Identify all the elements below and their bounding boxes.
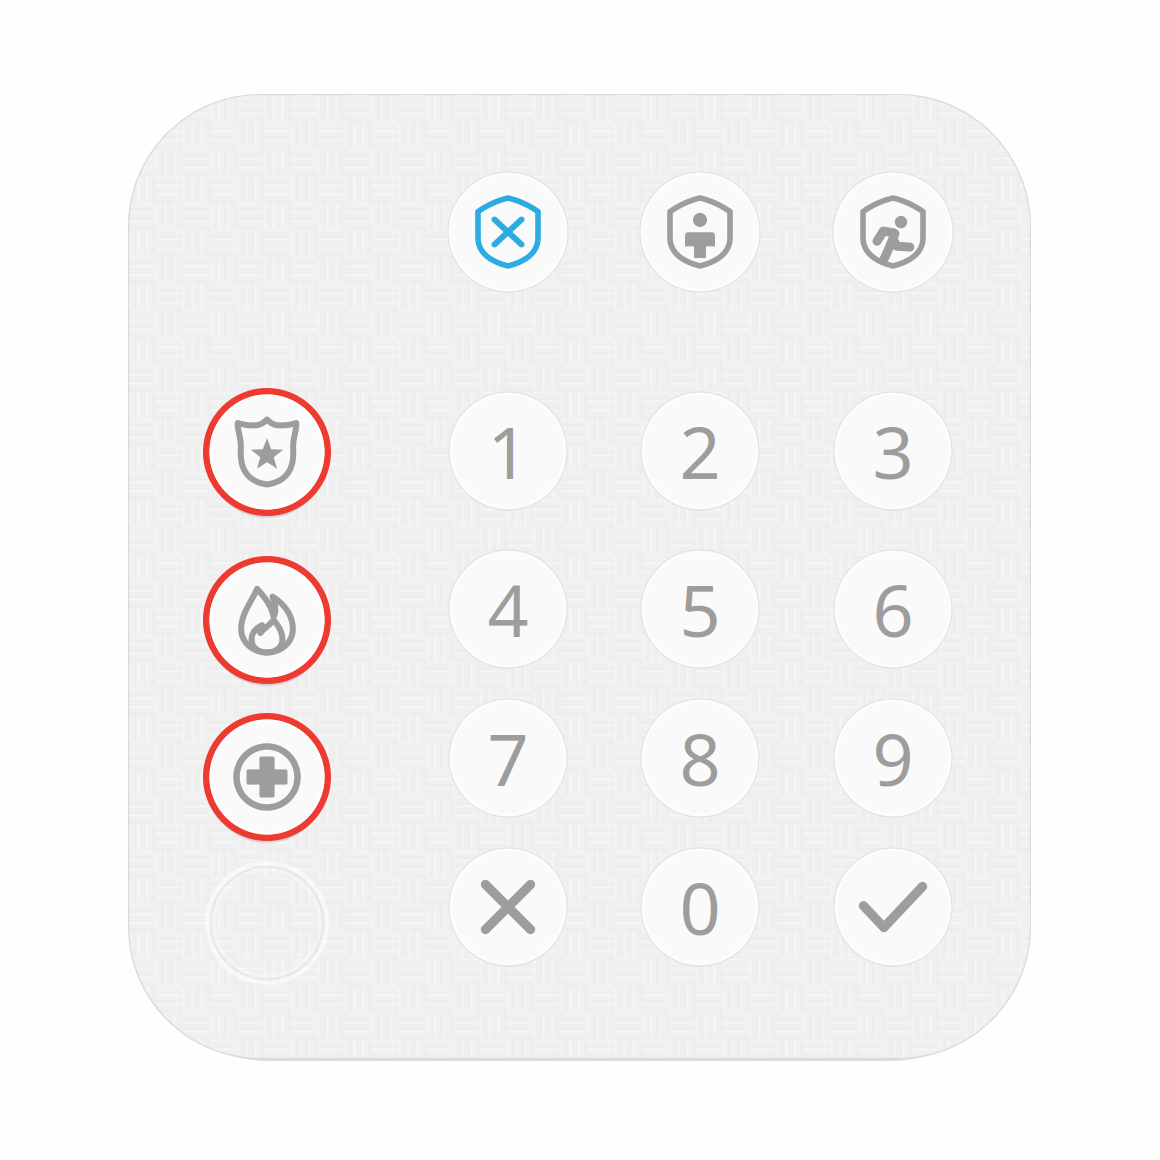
staticText: 1 [487,403,528,499]
button[interactable]: 8 [631,689,768,826]
staticText: 7 [487,710,528,806]
button[interactable]: Arm stay [630,162,769,301]
button[interactable]: 7 [439,689,576,826]
staticText: 6 [872,561,913,657]
button[interactable]: 3 [824,382,961,519]
button[interactable]: 4 [439,540,576,677]
button[interactable]: Medical [194,704,340,850]
button[interactable]: Clear [439,838,576,975]
staticText: 5 [679,561,720,657]
button[interactable]: Arm away [823,162,962,301]
staticText: 8 [679,710,720,806]
button[interactable]: Disarm [438,162,577,301]
staticText: 4 [487,561,528,657]
button[interactable]: Fire [194,547,340,693]
button[interactable]: 0 [631,838,768,975]
button[interactable]: Enter [824,838,961,975]
staticText: 9 [872,710,913,806]
staticText: 3 [872,403,913,499]
button[interactable]: 5 [631,540,768,677]
button[interactable]: Police [194,379,340,525]
button[interactable]: 6 [824,540,961,677]
button[interactable]: 2 [631,382,768,519]
staticText: 2 [679,403,720,499]
button[interactable]: 1 [439,382,576,519]
staticText: 0 [679,859,720,955]
button[interactable]: 9 [824,689,961,826]
